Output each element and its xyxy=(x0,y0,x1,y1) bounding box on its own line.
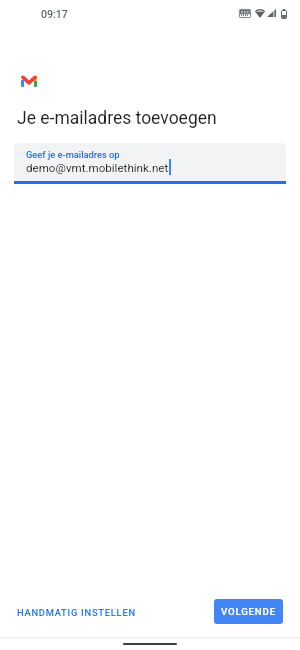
staticText: VOLGENDE xyxy=(221,606,276,617)
staticText: HANDMATIG INSTELLEN xyxy=(17,607,136,618)
staticText: demo@vmt.mobilethink.net xyxy=(26,161,169,175)
button[interactable]: HANDMATIG INSTELLEN xyxy=(9,600,144,625)
button[interactable]: VOLGENDE xyxy=(214,599,283,624)
button[interactable]: Geef je e-mailadres op xyxy=(14,143,286,181)
staticText: 09:17 xyxy=(41,8,68,20)
staticText: Geef je e-mailadres op xyxy=(26,149,120,160)
staticText: Je e-mailadres toevoegen xyxy=(17,108,217,129)
